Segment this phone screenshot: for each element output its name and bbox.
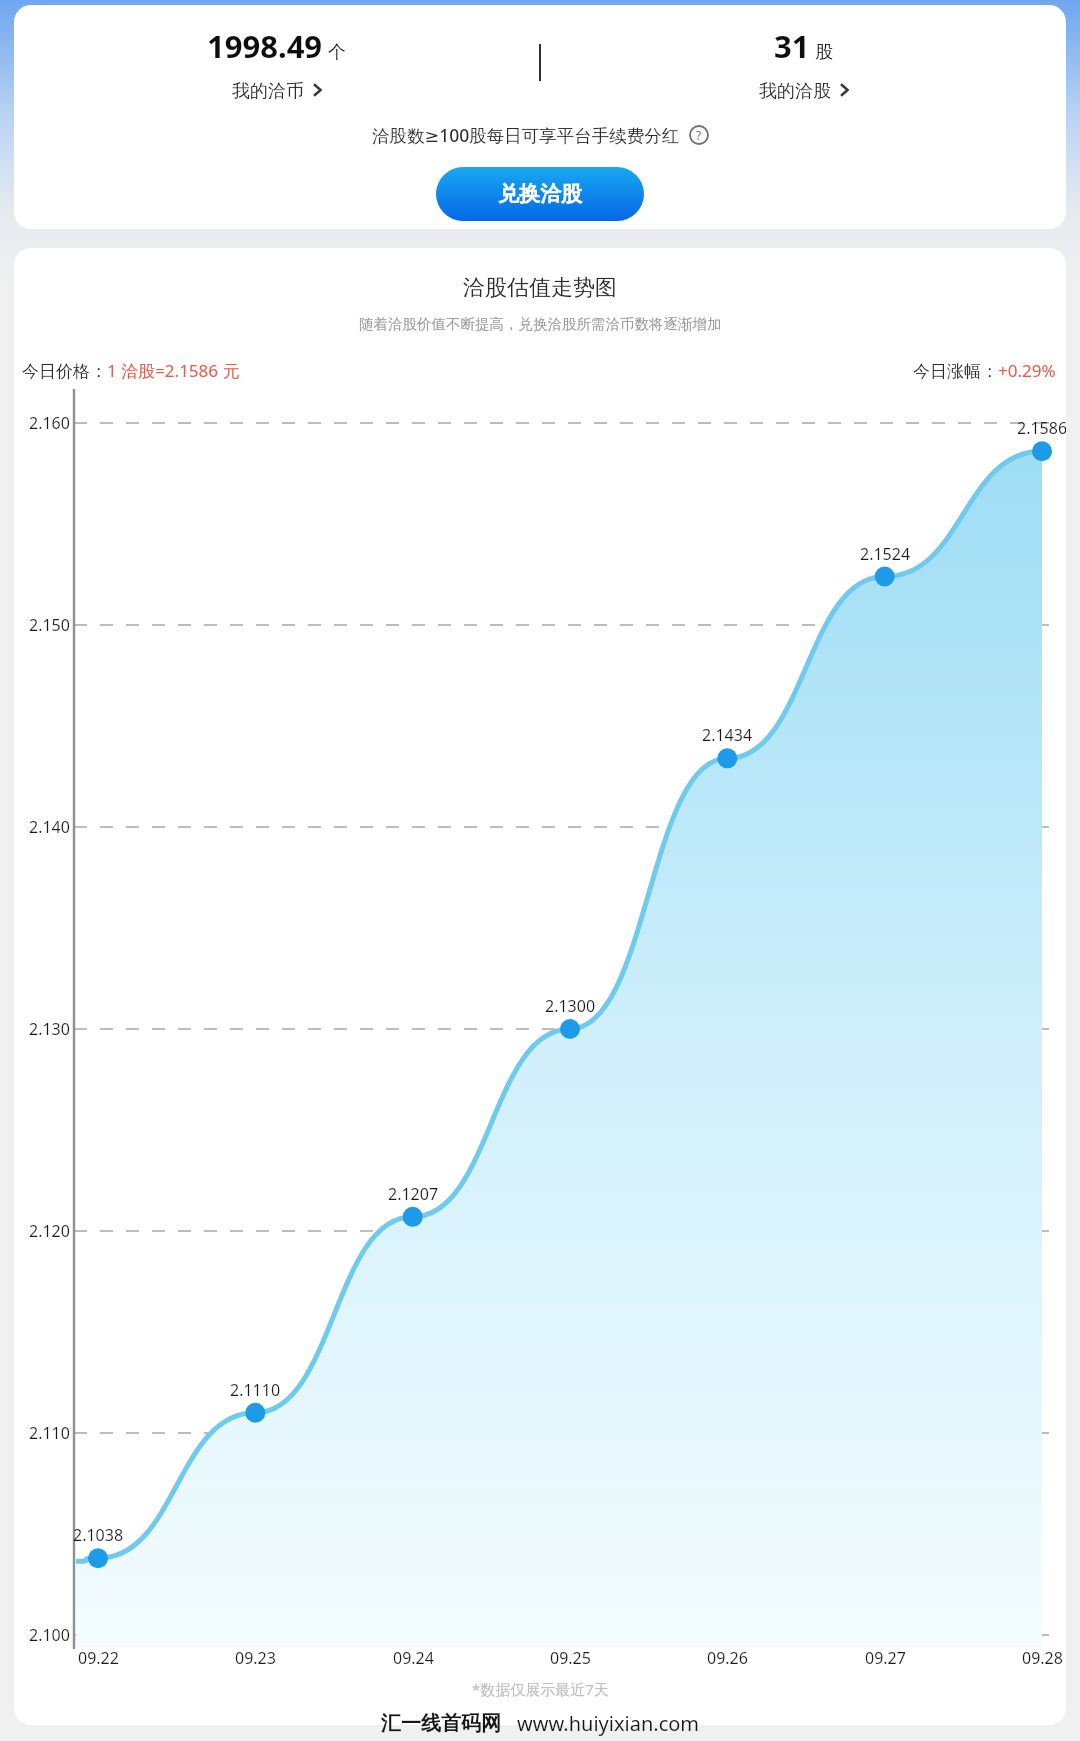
staticText: 2.150: [29, 614, 70, 636]
staticText: 09.25: [550, 1647, 591, 1669]
staticText: 个: [328, 41, 346, 64]
staticText: 2.140: [29, 816, 70, 838]
staticText: 2.1038: [73, 1524, 124, 1546]
staticText: 2.1110: [230, 1379, 281, 1401]
staticText: 股: [815, 41, 833, 64]
button[interactable]: 1998.49: [14, 25, 539, 99]
staticText: 2.110: [29, 1422, 70, 1444]
staticText: 2.160: [29, 412, 70, 434]
staticText: 随着洽股价值不断提高，兑换洽股所需洽币数将逐渐增加: [359, 315, 722, 333]
staticText: 2.130: [29, 1018, 70, 1040]
staticText: 兑换洽股: [498, 181, 582, 207]
staticText: 洽股估值走势图: [463, 274, 617, 302]
staticText: 09.27: [865, 1647, 906, 1669]
staticText: 2.1207: [388, 1183, 439, 1205]
staticText: 09.24: [393, 1647, 434, 1669]
staticText: 2.120: [29, 1220, 70, 1242]
staticText: ?: [696, 127, 702, 143]
staticText: 09.28: [1022, 1647, 1063, 1669]
staticText: 2.1586: [1017, 417, 1066, 439]
button[interactable]: 31: [541, 25, 1066, 99]
staticText: 我的洽股: [759, 80, 831, 99]
staticText: *数据仅展示最近7天: [472, 1679, 609, 1699]
staticText: 今日涨幅：+0.29%: [913, 359, 1056, 382]
staticText: 09.26: [707, 1647, 748, 1669]
staticText: 2.1434: [702, 724, 753, 746]
staticText: 31: [774, 25, 810, 67]
staticText: 2.1524: [860, 543, 911, 565]
other: 帮助说明: [689, 125, 709, 145]
staticText: 1998.49: [207, 25, 323, 67]
staticText: 今日价格：1 洽股=2.1586 元: [22, 359, 240, 382]
staticText: 09.23: [235, 1647, 276, 1669]
staticText: 汇一线首码网: [381, 1711, 501, 1736]
staticText: 2.1300: [545, 995, 596, 1017]
staticText: 我的洽币: [232, 80, 304, 99]
button[interactable]: 洽股数≥100股每日可享平台手续费分红: [368, 121, 713, 149]
staticText: 洽股数≥100股每日可享平台手续费分红: [372, 123, 680, 147]
button[interactable]: 兑换洽股: [436, 167, 644, 221]
staticText: www.huiyixian.com: [517, 1710, 700, 1737]
staticText: 09.22: [78, 1647, 119, 1669]
staticText: 2.100: [29, 1624, 70, 1646]
